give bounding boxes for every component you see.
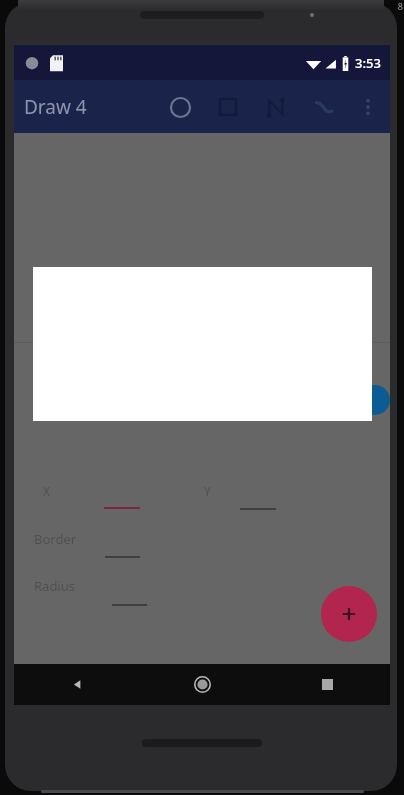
button[interactable]: Circle tool (156, 83, 204, 131)
staticText: Radius (34, 577, 75, 595)
button[interactable]: More options (348, 87, 388, 127)
button[interactable]: Back (14, 664, 140, 705)
staticText: Border (34, 530, 77, 548)
button[interactable]: Curve tool (300, 83, 348, 131)
staticText: X (43, 483, 51, 499)
staticText: 3:53 (355, 54, 381, 72)
staticText: Draw 4 (24, 94, 87, 120)
button[interactable]: Recent apps (265, 664, 390, 705)
staticText: Y (204, 483, 211, 499)
button[interactable]: Home (140, 664, 265, 705)
staticText: 8 (397, 0, 403, 12)
button[interactable]: Add shape (321, 586, 377, 642)
